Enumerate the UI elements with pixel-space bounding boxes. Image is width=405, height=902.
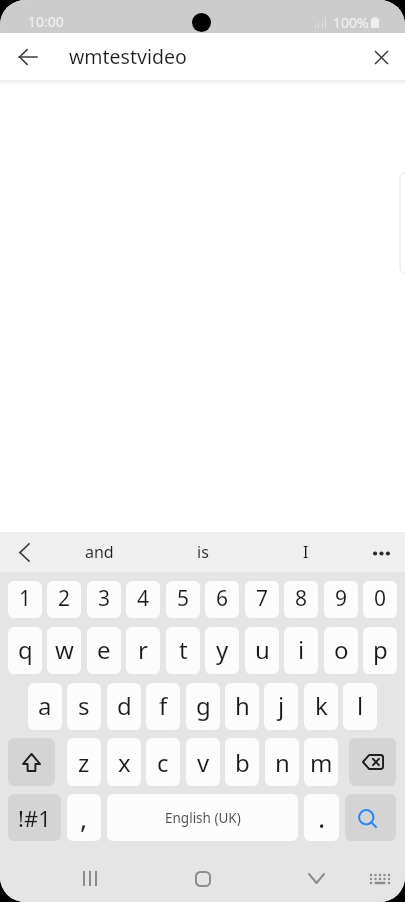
staticText: y xyxy=(216,633,229,666)
button[interactable]: Recent apps xyxy=(62,855,118,902)
button[interactable]: I xyxy=(254,532,357,572)
staticText: 5 xyxy=(177,584,190,613)
staticText: t xyxy=(179,633,188,666)
staticText: a xyxy=(38,689,52,722)
button[interactable]: x xyxy=(107,738,141,786)
button[interactable]: Hide keyboard xyxy=(288,855,344,902)
staticText: h xyxy=(235,689,250,722)
button[interactable]: Navigate up xyxy=(6,35,50,79)
staticText: p xyxy=(373,633,388,666)
button[interactable]: Clear query xyxy=(359,35,403,79)
staticText: I xyxy=(303,541,309,563)
button[interactable]: 0 xyxy=(363,581,397,618)
staticText: q xyxy=(18,633,33,666)
button[interactable]: 3 xyxy=(87,581,121,618)
button[interactable]: d xyxy=(107,683,141,730)
staticText: 3 xyxy=(98,584,111,613)
button[interactable]: o xyxy=(324,627,358,674)
staticText: n xyxy=(275,746,290,779)
button[interactable]: English (UK) xyxy=(107,794,298,841)
button[interactable]: 1 xyxy=(8,581,42,618)
button[interactable]: a xyxy=(28,683,62,730)
button[interactable]: k xyxy=(304,683,338,730)
button[interactable]: 2 xyxy=(47,581,81,618)
staticText: 7 xyxy=(256,584,269,613)
staticText: o xyxy=(334,633,349,666)
staticText: z xyxy=(78,746,90,779)
button[interactable]: , xyxy=(67,794,101,841)
staticText: i xyxy=(298,633,305,666)
button[interactable]: h xyxy=(225,683,259,730)
staticText: s xyxy=(78,689,90,722)
button[interactable]: n xyxy=(265,738,299,786)
staticText: 10:00 xyxy=(28,12,64,31)
staticText: and xyxy=(85,541,114,563)
staticText: 2 xyxy=(58,584,71,613)
staticText: u xyxy=(255,633,270,666)
staticText: e xyxy=(97,633,111,666)
staticText: 1 xyxy=(19,584,32,613)
button[interactable]: Switch keyboard xyxy=(352,855,405,902)
button[interactable]: 8 xyxy=(284,581,318,618)
button[interactable]: w xyxy=(47,627,81,674)
button[interactable]: s xyxy=(67,683,101,730)
button[interactable]: Backspace xyxy=(349,738,396,786)
staticText: English (UK) xyxy=(165,809,241,827)
button[interactable]: b xyxy=(225,738,259,786)
button[interactable]: 5 xyxy=(166,581,200,618)
staticText: g xyxy=(196,689,211,722)
button[interactable]: v xyxy=(186,738,220,786)
staticText: l xyxy=(357,689,364,722)
button[interactable]: t xyxy=(166,627,200,674)
button[interactable]: 9 xyxy=(324,581,358,618)
button[interactable]: j xyxy=(264,683,298,730)
button[interactable]: i xyxy=(284,627,318,674)
button[interactable]: q xyxy=(8,627,42,674)
button[interactable]: l xyxy=(343,683,377,730)
button[interactable]: 4 xyxy=(126,581,160,618)
staticText: d xyxy=(117,689,132,722)
staticText: wmtestvideo xyxy=(69,43,187,70)
button[interactable]: Search xyxy=(345,794,396,841)
staticText: v xyxy=(197,746,210,779)
button[interactable]: m xyxy=(304,738,338,786)
staticText: f xyxy=(159,689,168,722)
button[interactable]: c xyxy=(146,738,180,786)
button[interactable]: 7 xyxy=(245,581,279,618)
button[interactable]: is xyxy=(151,532,254,572)
staticText: x xyxy=(118,746,131,779)
staticText: w xyxy=(55,633,74,666)
staticText: is xyxy=(197,541,209,563)
staticText: j xyxy=(278,689,285,722)
staticText: 100% xyxy=(333,13,369,32)
staticText: r xyxy=(138,633,148,666)
staticText: b xyxy=(235,746,250,779)
button[interactable]: . xyxy=(304,794,339,841)
button[interactable]: g xyxy=(186,683,220,730)
button[interactable]: z xyxy=(67,738,101,786)
button[interactable]: 6 xyxy=(205,581,239,618)
button[interactable]: Shift xyxy=(8,738,55,786)
button[interactable]: Home xyxy=(175,855,231,902)
staticText: c xyxy=(157,746,169,779)
button[interactable]: y xyxy=(205,627,239,674)
staticText: 6 xyxy=(216,584,229,613)
staticText: 8 xyxy=(295,584,308,613)
staticText: . xyxy=(318,799,326,836)
button[interactable]: f xyxy=(146,683,180,730)
staticText: !#1 xyxy=(18,803,51,833)
button[interactable]: r xyxy=(126,627,160,674)
button[interactable]: More options xyxy=(357,532,405,572)
staticText: 9 xyxy=(335,584,348,613)
staticText: 0 xyxy=(374,584,387,613)
button[interactable]: p xyxy=(363,627,397,674)
button[interactable]: and xyxy=(48,532,151,572)
staticText: k xyxy=(315,689,328,722)
staticText: 4 xyxy=(137,584,150,613)
staticText: m xyxy=(310,746,333,779)
button[interactable]: Previous suggestions xyxy=(0,532,48,572)
button[interactable]: !#1 xyxy=(8,794,61,841)
staticText: , xyxy=(80,799,88,836)
button[interactable]: u xyxy=(245,627,279,674)
button[interactable]: e xyxy=(87,627,121,674)
